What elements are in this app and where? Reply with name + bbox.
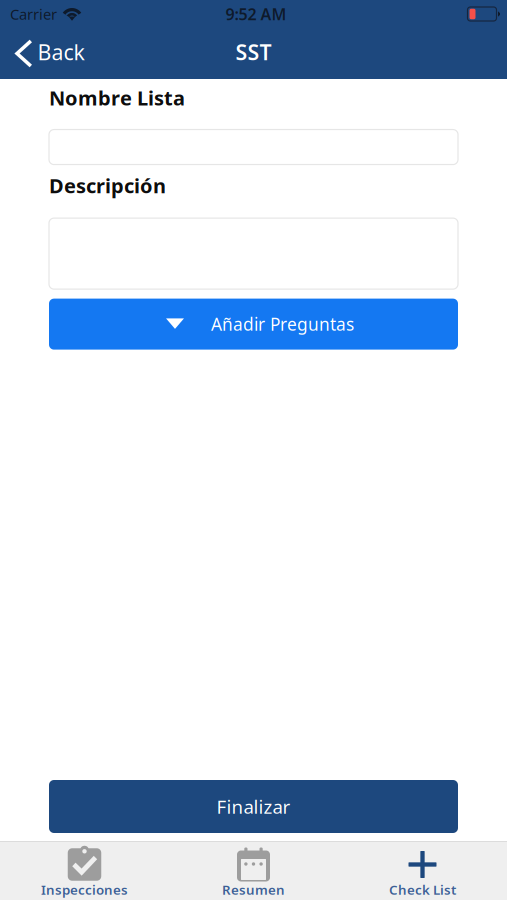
button[interactable]: Check List [338,841,507,900]
button[interactable]: Resumen [169,841,338,900]
staticText: Descripción [49,172,166,199]
staticText: Back [37,38,84,66]
staticText: SST [235,38,271,66]
button[interactable]: Añadir Preguntas [49,299,458,350]
button[interactable]: Inspecciones [0,841,169,900]
button[interactable]: Finalizar [49,780,458,833]
staticText: Carrier [10,4,57,24]
button[interactable]: Back [0,28,94,79]
staticText: Resumen [222,881,285,898]
staticText: Check List [389,881,456,898]
staticText: Añadir Preguntas [211,313,354,336]
staticText: Finalizar [216,794,290,819]
staticText: 9:52 AM [225,3,286,25]
staticText: Nombre Lista [49,84,185,111]
staticText: Inspecciones [41,881,128,898]
